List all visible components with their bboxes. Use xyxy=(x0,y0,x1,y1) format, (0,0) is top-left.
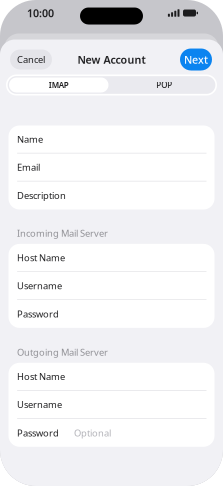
button[interactable]: Username xyxy=(8,272,214,300)
staticText: Password xyxy=(17,427,59,439)
staticText: Cancel xyxy=(17,53,45,66)
staticText: 10:00 xyxy=(27,6,54,20)
staticText: Outgoing Mail Server xyxy=(17,346,108,358)
staticText: Host Name xyxy=(17,251,65,264)
button[interactable]: Host Name xyxy=(8,244,214,272)
staticText: Username xyxy=(17,398,62,411)
button[interactable]: Next xyxy=(180,48,212,70)
staticText: Name xyxy=(17,133,43,145)
button[interactable]: IMAP xyxy=(6,74,111,95)
button[interactable]: Name xyxy=(8,125,214,153)
staticText: Incoming Mail Server xyxy=(17,227,108,239)
staticText: Description xyxy=(17,189,66,202)
staticText: Password xyxy=(17,308,59,320)
button[interactable]: Host Name xyxy=(8,363,214,391)
staticText: IMAP xyxy=(49,80,69,90)
staticText: New Account xyxy=(77,52,145,67)
staticText: Email xyxy=(17,161,40,173)
button[interactable]: Username xyxy=(8,391,214,419)
button[interactable]: Password xyxy=(8,300,214,328)
button[interactable]: POP xyxy=(111,74,217,95)
staticText: Optional xyxy=(74,427,111,439)
staticText: Next xyxy=(184,52,208,67)
button[interactable]: Description xyxy=(8,181,214,209)
staticText: Username xyxy=(17,279,62,292)
staticText: Host Name xyxy=(17,370,65,383)
button[interactable]: Email xyxy=(8,153,214,181)
button[interactable]: Cancel xyxy=(10,49,52,69)
button[interactable]: Password xyxy=(8,419,214,447)
staticText: POP xyxy=(156,80,172,90)
